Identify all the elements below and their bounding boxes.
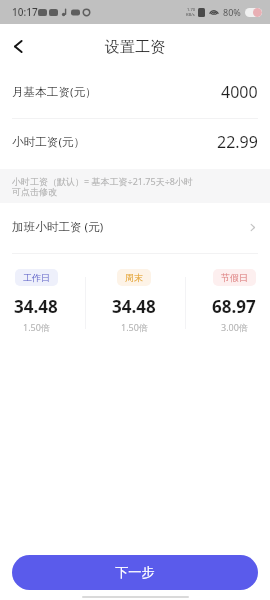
staticText: 80% — [223, 6, 241, 18]
staticText: 设置工资 — [105, 38, 165, 57]
button[interactable]: 月基本工资(元） — [0, 81, 270, 103]
staticText: 小时工资(元） — [12, 134, 86, 150]
staticText: 4000 — [221, 81, 258, 103]
staticText: 3.00倍 — [221, 321, 248, 333]
staticText: KB/s — [186, 12, 195, 17]
staticText: 22.99 — [217, 131, 258, 153]
staticText: 节假日 — [221, 272, 248, 283]
staticText: 1.70 — [187, 7, 195, 12]
staticText: 68.97 — [212, 295, 256, 318]
button[interactable]: Back — [5, 33, 31, 59]
staticText: 1.50倍 — [121, 321, 148, 333]
staticText: 下一步 — [115, 564, 155, 581]
staticText: 工作日 — [23, 272, 50, 283]
button[interactable]: 工作日 — [0, 266, 72, 333]
staticText: 加班小时工资 (元) — [12, 219, 104, 235]
staticText: 1.50倍 — [23, 321, 50, 333]
staticText: 10:17 — [12, 5, 38, 19]
button[interactable]: 加班小时工资 (元) — [0, 216, 270, 238]
button[interactable]: 节假日 — [198, 266, 270, 333]
button[interactable]: 小时工资(元） — [0, 131, 270, 153]
staticText: 34.48 — [112, 295, 156, 318]
staticText: 月基本工资(元） — [12, 84, 97, 100]
staticText: 周末 — [125, 272, 143, 283]
button[interactable]: 下一步 — [12, 555, 258, 590]
staticText: 小时工资（默认）= 基本工资÷21.75天÷8小时 可点击修改 — [12, 175, 193, 198]
button[interactable]: 周末 — [98, 266, 170, 333]
staticText: 34.48 — [14, 295, 58, 318]
